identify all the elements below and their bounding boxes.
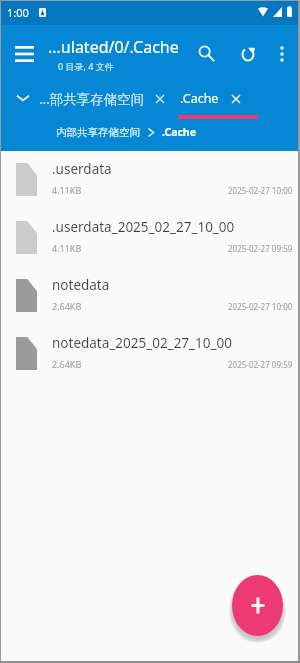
staticText: 2.64KB	[52, 300, 82, 312]
staticText: .userdata	[52, 160, 112, 178]
staticText: 2025-02-27 10:00	[228, 185, 293, 196]
button[interactable]: Menu	[6, 36, 42, 72]
button[interactable]: Search	[188, 35, 224, 71]
staticText: 2025-02-27 09:59	[228, 359, 293, 370]
staticText: ...部共享存储空间	[39, 90, 145, 108]
button[interactable]: notedata_2025_02_27_10_00	[0, 325, 300, 383]
button[interactable]: .userdata	[0, 151, 300, 209]
staticText: .Cache	[180, 90, 219, 107]
button[interactable]: 内部共享存储空间	[56, 125, 196, 139]
staticText: 0 目录, 4 文件	[58, 60, 114, 72]
button[interactable]: .userdata_2025_02_27_10_00	[0, 209, 300, 267]
staticText: 4.11KB	[52, 184, 82, 196]
button[interactable]: More options	[264, 36, 300, 72]
button[interactable]: ...部共享存储空间	[39, 90, 164, 108]
button[interactable]: .Cache	[180, 90, 240, 107]
staticText: notedata_2025_02_27_10_00	[52, 334, 232, 352]
button[interactable]: Refresh	[230, 36, 266, 72]
staticText: .userdata_2025_02_27_10_00	[52, 218, 235, 236]
staticText: 2025-02-27 10:00	[228, 301, 293, 312]
staticText: .Cache	[162, 125, 196, 139]
staticText: 1:00	[7, 5, 29, 20]
button[interactable]: Expand tabs	[8, 83, 38, 113]
button[interactable]: Add	[232, 575, 283, 636]
staticText: ...ulated/0/.Cache	[48, 36, 179, 58]
button[interactable]: notedata	[0, 267, 300, 325]
staticText: 2025-02-27 09:59	[228, 243, 293, 254]
staticText: notedata	[52, 276, 110, 294]
staticText: 4.11KB	[52, 242, 82, 254]
staticText: 内部共享存储空间	[56, 126, 140, 139]
staticText: 2.64KB	[52, 358, 82, 370]
